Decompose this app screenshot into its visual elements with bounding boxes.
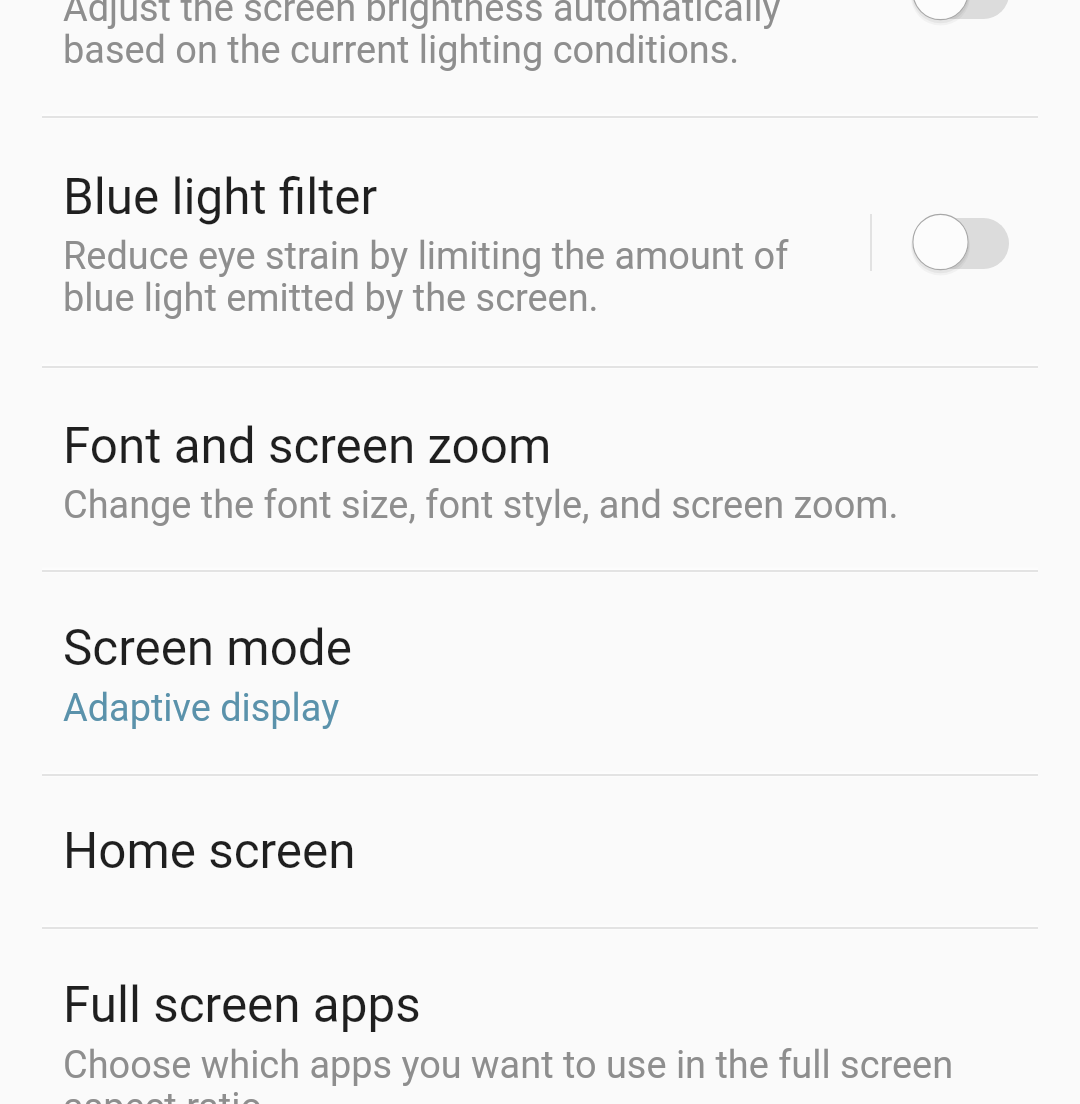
button[interactable]: Full screen apps — [0, 928, 1080, 1104]
staticText: Blue light filter — [63, 168, 378, 226]
staticText: Adjust the screen brightness automatical… — [63, 0, 781, 73]
button[interactable]: Screen mode — [0, 571, 1080, 774]
staticText: Screen mode — [63, 619, 352, 677]
staticText: Font and screen zoom — [63, 417, 552, 475]
button[interactable]: Home screen — [0, 775, 1080, 927]
staticText: Full screen apps — [63, 976, 421, 1034]
staticText: Choose which apps you want to use in the… — [63, 1043, 954, 1104]
staticText: Adaptive display — [63, 686, 340, 730]
staticText: Home screen — [63, 822, 356, 880]
button[interactable]: Font and screen zoom — [0, 367, 1080, 570]
button[interactable]: Toggle — [906, 0, 975, 28]
button[interactable]: Blue light filter — [0, 117, 1080, 366]
button[interactable]: Toggle — [906, 209, 975, 278]
staticText: Reduce eye strain by limiting the amount… — [63, 234, 789, 321]
staticText: Change the font size, font style, and sc… — [63, 483, 899, 527]
button[interactable]: Auto brightness — [0, 0, 1080, 116]
